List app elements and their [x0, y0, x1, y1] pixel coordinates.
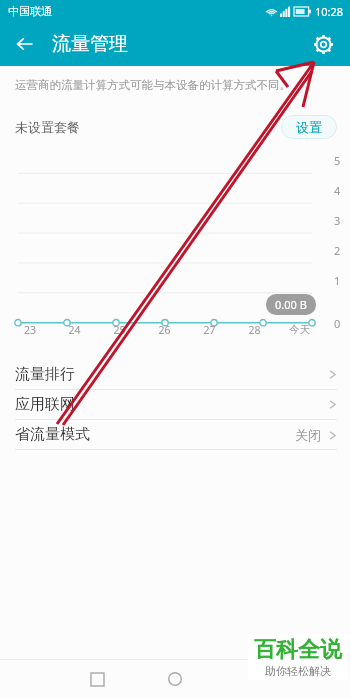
staticText: 0 [334, 316, 341, 331]
staticText: 设置 [296, 119, 322, 135]
staticText: 百科全说 [254, 636, 342, 664]
staticText: 流量管理 [52, 32, 128, 56]
button[interactable]: Home [158, 662, 192, 696]
staticText: 26 [142, 323, 187, 337]
staticText: 1 [334, 273, 341, 288]
staticText: 5 [334, 153, 341, 168]
button[interactable]: 应用联网 [0, 390, 350, 419]
staticText: 流量排行 [15, 365, 75, 384]
staticText: 运营商的流量计算方式可能与本设备的计算方式不同。 [15, 78, 291, 92]
staticText: 中国联通 [8, 4, 52, 18]
staticText: 28 [232, 323, 277, 337]
button[interactable]: 设置 [281, 115, 337, 139]
staticText: 未设置套餐 [15, 119, 80, 135]
staticText: 3 [334, 213, 341, 228]
staticText: 27 [187, 323, 232, 337]
button[interactable]: Back [4, 23, 46, 65]
staticText: 助你轻松解决 [265, 664, 331, 678]
staticText: 应用联网 [15, 395, 75, 414]
button[interactable]: Settings [302, 23, 344, 65]
button[interactable]: Recents [80, 662, 114, 696]
staticText: 省流量模式 [15, 425, 90, 444]
staticText: 2 [334, 243, 341, 258]
staticText: 0.00 B [275, 297, 307, 312]
button[interactable]: 流量排行 [0, 360, 350, 389]
staticText: 24 [52, 323, 97, 337]
staticText: 25 [97, 323, 142, 337]
staticText: 4 [334, 183, 341, 198]
staticText: 今天 [277, 323, 322, 336]
staticText: 10:28 [315, 4, 344, 19]
button[interactable]: 省流量模式 [0, 420, 350, 449]
staticText: 23 [8, 323, 52, 337]
staticText: 关闭 [295, 427, 321, 443]
